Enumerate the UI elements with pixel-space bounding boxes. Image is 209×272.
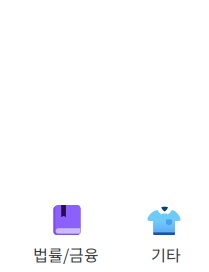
button[interactable]: 법률/금융 <box>18 204 114 266</box>
staticText: 법률/금융 <box>33 243 99 266</box>
staticText: 기타 <box>151 243 181 266</box>
button[interactable]: 기타 <box>118 204 209 266</box>
